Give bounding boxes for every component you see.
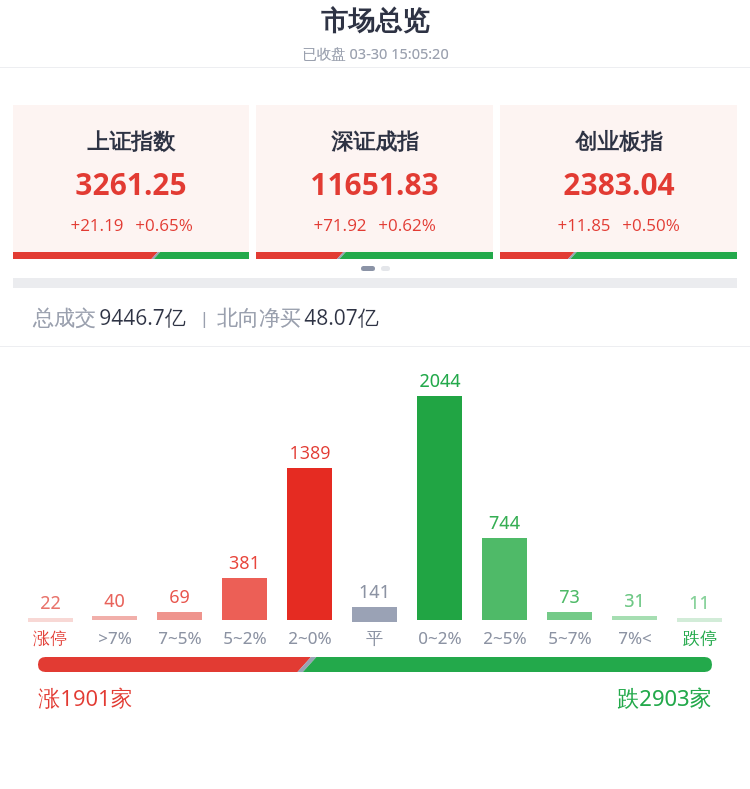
staticText: 创业板指 [575, 128, 663, 156]
staticText: 2044 [419, 368, 461, 393]
staticText: 22 [40, 590, 61, 615]
staticText: | [186, 306, 214, 329]
button[interactable]: 73 [537, 347, 602, 649]
button[interactable]: 69 [147, 347, 212, 649]
staticText: 涨1901家 [38, 682, 133, 712]
staticText: 2~0% [288, 626, 332, 649]
button[interactable]: 1389 [277, 347, 342, 649]
staticText: 2383.04 [563, 163, 675, 204]
button[interactable]: 141 [342, 347, 407, 649]
staticText: +0.50% [622, 213, 680, 236]
staticText: 市场总览 [321, 4, 429, 38]
button[interactable]: 上证指数 [13, 105, 249, 259]
button[interactable]: 创业板指 [500, 105, 737, 259]
staticText: +0.62% [378, 213, 436, 236]
staticText: 2~5% [483, 626, 527, 649]
button[interactable]: 11 [667, 347, 732, 649]
staticText: >7% [98, 626, 132, 649]
button[interactable]: 31 [602, 347, 667, 649]
staticText: 上证指数 [87, 128, 175, 156]
staticText: 5~2% [223, 626, 267, 649]
staticText: +11.85 [557, 213, 611, 236]
staticText: 9446.7亿 [99, 303, 186, 332]
staticText: 深证成指 [331, 128, 419, 156]
button[interactable]: 381 [212, 347, 277, 649]
staticText: 已收盘 03-30 15:05:20 [302, 43, 449, 63]
button[interactable]: 40 [82, 347, 147, 649]
staticText: 涨停 [33, 628, 67, 649]
staticText: 3261.25 [75, 163, 187, 204]
staticText: 73 [559, 584, 580, 609]
staticText: 平 [366, 628, 383, 649]
staticText: +0.65% [135, 213, 193, 236]
button[interactable]: 总成交 [0, 288, 750, 346]
staticText: 48.07亿 [304, 303, 379, 332]
staticText: 141 [359, 579, 390, 604]
staticText: 381 [229, 550, 260, 575]
staticText: 跌停 [683, 628, 717, 649]
staticText: 40 [104, 588, 125, 613]
staticText: +71.92 [313, 213, 367, 236]
button[interactable]: 深证成指 [256, 105, 493, 259]
staticText: 1389 [289, 440, 331, 465]
staticText: 7~5% [158, 626, 202, 649]
staticText: 69 [169, 584, 190, 609]
staticText: 0~2% [418, 626, 462, 649]
staticText: 11 [689, 590, 710, 615]
staticText: 跌2903家 [617, 682, 712, 712]
staticText: 744 [489, 510, 520, 535]
button[interactable]: 2044 [407, 347, 472, 649]
staticText: 7%< [618, 626, 652, 649]
staticText: 11651.83 [310, 163, 439, 204]
button[interactable]: 744 [472, 347, 537, 649]
staticText: 总成交 [30, 303, 99, 332]
button[interactable]: 22 [18, 347, 82, 649]
staticText: 5~7% [548, 626, 592, 649]
staticText: +21.19 [70, 213, 124, 236]
staticText: 北向净买 [214, 303, 304, 332]
staticText: 31 [624, 588, 645, 613]
